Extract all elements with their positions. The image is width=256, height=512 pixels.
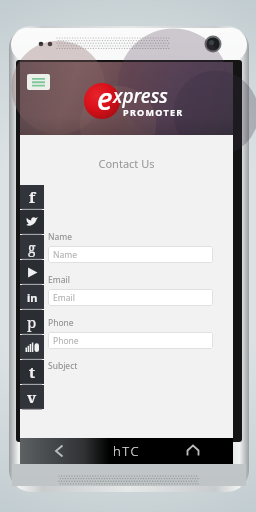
button[interactable]: VI [20,385,44,409]
staticText: Contact Us [20,156,233,171]
button[interactable]: IN [20,285,44,309]
button[interactable]: GP [20,235,44,259]
button[interactable]: TW [20,210,44,234]
button[interactable]: YT [20,260,44,284]
button[interactable]: Name [48,246,213,263]
button[interactable]: Open navigation menu [27,74,50,90]
button[interactable]: TU [20,360,44,384]
staticText: Subject [48,360,78,372]
button[interactable]: Phone [48,332,213,349]
staticText: PROMOTER [123,106,184,118]
staticText: Email [53,292,75,304]
button[interactable]: PI [20,310,44,334]
staticText: Email [48,274,70,286]
staticText: in [27,290,38,305]
staticText: t [29,362,36,382]
staticText: Name [53,249,77,261]
staticText: Phone [53,335,79,347]
staticText: v [27,387,37,407]
staticText: e [97,78,113,119]
staticText: Phone [48,317,74,329]
staticText: hTC [113,442,141,460]
button[interactable]: SC [20,335,44,359]
staticText: xpress [113,83,168,109]
staticText: p [27,312,37,332]
button[interactable]: FB [20,185,44,209]
staticText: f [29,187,36,207]
staticText: g [28,238,36,257]
button[interactable]: Email [48,289,213,306]
staticText: Name [48,231,72,243]
